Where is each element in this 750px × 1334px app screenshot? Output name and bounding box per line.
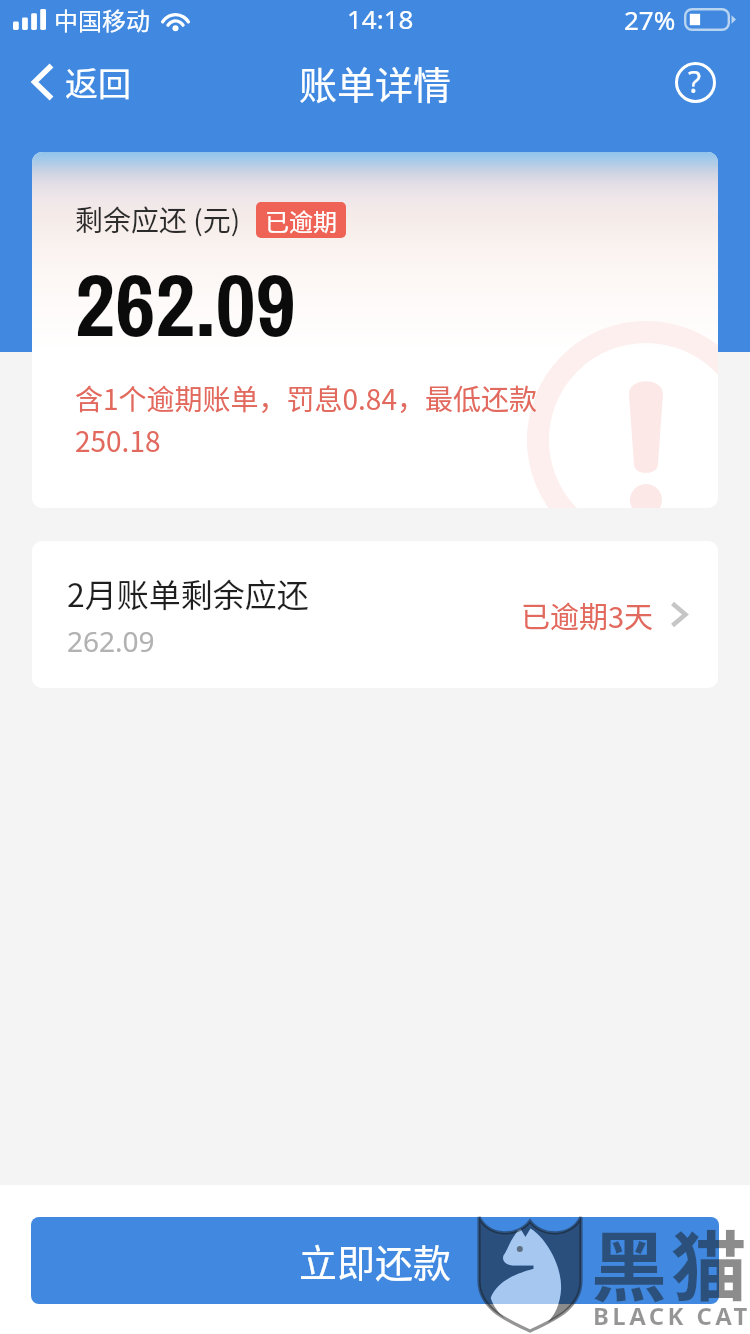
staticText: 立即还款 (299, 1233, 452, 1288)
button[interactable]: 返回 (0, 44, 147, 120)
staticText: 含1个逾期账单，罚息0.84，最低还款 250.18 (75, 378, 555, 460)
button[interactable]: 2月账单剩余应还 (32, 541, 718, 688)
staticText: 已逾期 (265, 203, 337, 238)
staticText: 14:18 (347, 1, 414, 36)
staticText: 剩余应还 (元) (75, 199, 241, 240)
staticText: 中国移动 (54, 2, 150, 37)
button[interactable]: 立即还款 (31, 1217, 719, 1304)
staticText: BLACK CAT (593, 1299, 750, 1332)
staticText: 黑猫 (591, 1207, 750, 1317)
staticText: 27% (624, 2, 676, 37)
staticText: 262.09 (75, 245, 296, 364)
staticText: ? (688, 61, 702, 102)
button[interactable]: Help (671, 58, 719, 106)
staticText: 262.09 (67, 622, 155, 660)
staticText: 已逾期3天 (521, 594, 654, 636)
staticText: 返回 (65, 58, 131, 106)
staticText: 账单详情 (299, 55, 452, 110)
staticText: 2月账单剩余应还 (67, 570, 309, 616)
